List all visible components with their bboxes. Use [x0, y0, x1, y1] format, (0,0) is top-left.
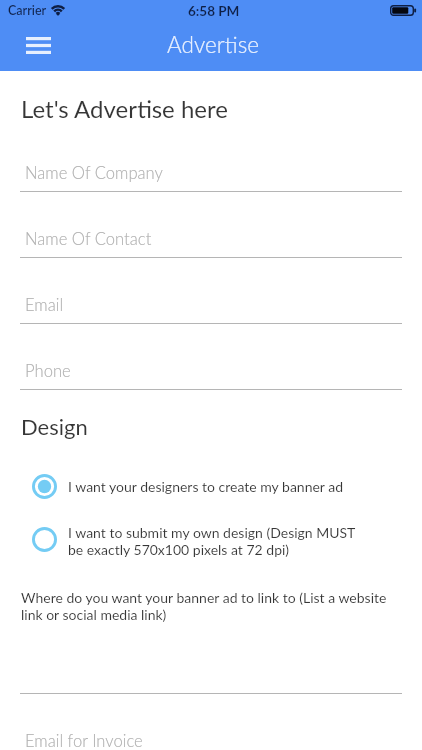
staticText: I want to submit my own design (Design M…	[68, 524, 356, 558]
button[interactable]: Open navigation menu	[16, 26, 61, 65]
button[interactable]: Name Of Contact	[20, 215, 402, 258]
staticText: Advertise	[167, 31, 259, 58]
staticText: Name Of Company	[25, 163, 163, 183]
staticText: 6:58 PM	[188, 3, 240, 19]
staticText: Phone	[25, 361, 71, 381]
button[interactable]: Phone	[20, 347, 402, 390]
staticText: Design	[21, 413, 88, 439]
staticText: Carrier	[8, 3, 47, 18]
button[interactable]: Email for Invoice	[20, 717, 402, 750]
button[interactable]: Email	[20, 281, 402, 324]
button[interactable]: I want your designers to create my banne…	[30, 468, 402, 504]
staticText: Where do you want your banner ad to link…	[21, 589, 387, 623]
button[interactable]: Name Of Company	[20, 149, 402, 192]
other: Wi-Fi signal	[50, 5, 66, 16]
staticText: Email for Invoice	[25, 731, 143, 750]
staticText: Email	[25, 295, 64, 315]
staticText: Name Of Contact	[25, 229, 152, 249]
staticText: Let's Advertise here	[21, 94, 228, 123]
button[interactable]: I want to submit my own design (Design M…	[30, 521, 402, 557]
button[interactable]	[20, 651, 402, 694]
other: Battery	[390, 5, 416, 16]
staticText: I want your designers to create my banne…	[68, 478, 344, 495]
